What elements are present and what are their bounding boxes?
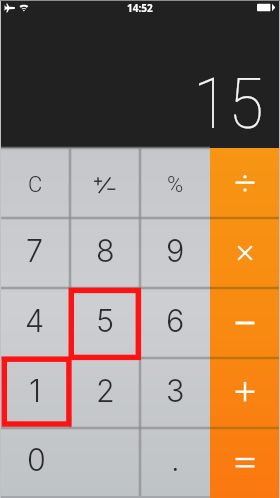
staticText: 15 [193, 63, 264, 145]
button[interactable]: . [140, 428, 210, 498]
button[interactable]: 5 [70, 288, 140, 358]
button[interactable]: Subtract [210, 288, 280, 358]
staticText: 3 [166, 372, 185, 409]
button[interactable]: 8 [70, 218, 140, 288]
button[interactable]: Equals [210, 428, 280, 498]
button[interactable]: 2 [70, 358, 140, 428]
button[interactable]: Divide [210, 148, 280, 218]
button[interactable]: C [0, 148, 70, 218]
staticText: 7 [26, 232, 44, 269]
staticText: 0 [27, 441, 46, 478]
button[interactable]: 0 [0, 428, 140, 498]
staticText: C [28, 172, 43, 198]
staticText: 14:52 [127, 1, 153, 15]
button[interactable]: 9 [140, 218, 210, 288]
button[interactable]: Add [210, 358, 280, 428]
button[interactable]: 4 [0, 288, 70, 358]
staticText: . [171, 441, 180, 478]
button[interactable]: 6 [140, 288, 210, 358]
staticText: 8 [96, 232, 115, 269]
button[interactable]: Multiply [210, 218, 280, 288]
button[interactable]: 1 [0, 358, 70, 428]
staticText: 5 [96, 302, 115, 339]
staticText: 4 [25, 302, 45, 339]
button[interactable]: % [140, 148, 210, 218]
button[interactable]: 7 [0, 218, 70, 288]
staticText: 9 [166, 232, 185, 269]
staticText: % [167, 172, 184, 198]
button[interactable]: 3 [140, 358, 210, 428]
staticText: 6 [166, 302, 185, 339]
button[interactable] [70, 148, 140, 218]
staticText: 2 [96, 372, 115, 409]
staticText: 1 [29, 372, 42, 409]
